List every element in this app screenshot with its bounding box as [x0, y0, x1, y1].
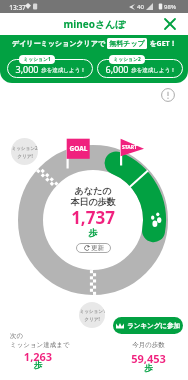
button[interactable]: ミッション1: [79, 302, 105, 328]
staticText: 1,737: [43, 206, 143, 229]
button[interactable]: 更新: [76, 243, 111, 253]
staticText: 本日の歩数: [43, 196, 143, 207]
staticText: 歩: [43, 227, 143, 238]
staticText: 歩: [8, 360, 68, 371]
staticText: mineoさんぽ: [63, 17, 126, 31]
staticText: クリア!: [84, 316, 100, 322]
button[interactable]: Info: [161, 88, 175, 102]
staticText: 3,000: [15, 63, 39, 75]
staticText: ミッション達成まで: [10, 341, 70, 349]
staticText: クリア!: [17, 153, 33, 159]
button[interactable]: ランキングに参加: [113, 317, 183, 334]
staticText: をGET！: [149, 39, 177, 49]
staticText: 1,263: [8, 349, 68, 364]
staticText: START: [121, 144, 138, 151]
staticText: 6,000: [105, 63, 129, 75]
staticText: 歩: [118, 363, 179, 374]
staticText: ランキングに参加: [127, 322, 180, 330]
staticText: 59,453: [118, 351, 179, 366]
staticText: ミッション1: [79, 308, 105, 314]
staticText: ミッション2: [11, 145, 38, 151]
staticText: 無料チップ: [109, 39, 145, 48]
button[interactable]: 6,000: [97, 59, 183, 78]
button[interactable]: ミッション2: [11, 138, 38, 165]
staticText: 98%: [164, 3, 176, 11]
staticText: 40: [137, 3, 144, 11]
staticText: 次の: [10, 332, 24, 340]
staticText: ミッション2: [113, 56, 141, 63]
staticText: 更新: [91, 244, 104, 252]
button[interactable]: 3,000: [7, 59, 93, 78]
staticText: 歩を達成しよう！: [41, 67, 86, 74]
staticText: 13:37: [9, 3, 26, 12]
button[interactable]: Close: [162, 16, 178, 32]
staticText: GOAL: [67, 144, 90, 153]
staticText: あなたの: [43, 185, 143, 196]
staticText: 歩を達成しよう！: [131, 67, 176, 74]
staticText: デイリーミッションクリアで: [12, 39, 105, 48]
staticText: ミッション1: [23, 56, 51, 63]
staticText: 今月の歩数: [118, 341, 179, 349]
